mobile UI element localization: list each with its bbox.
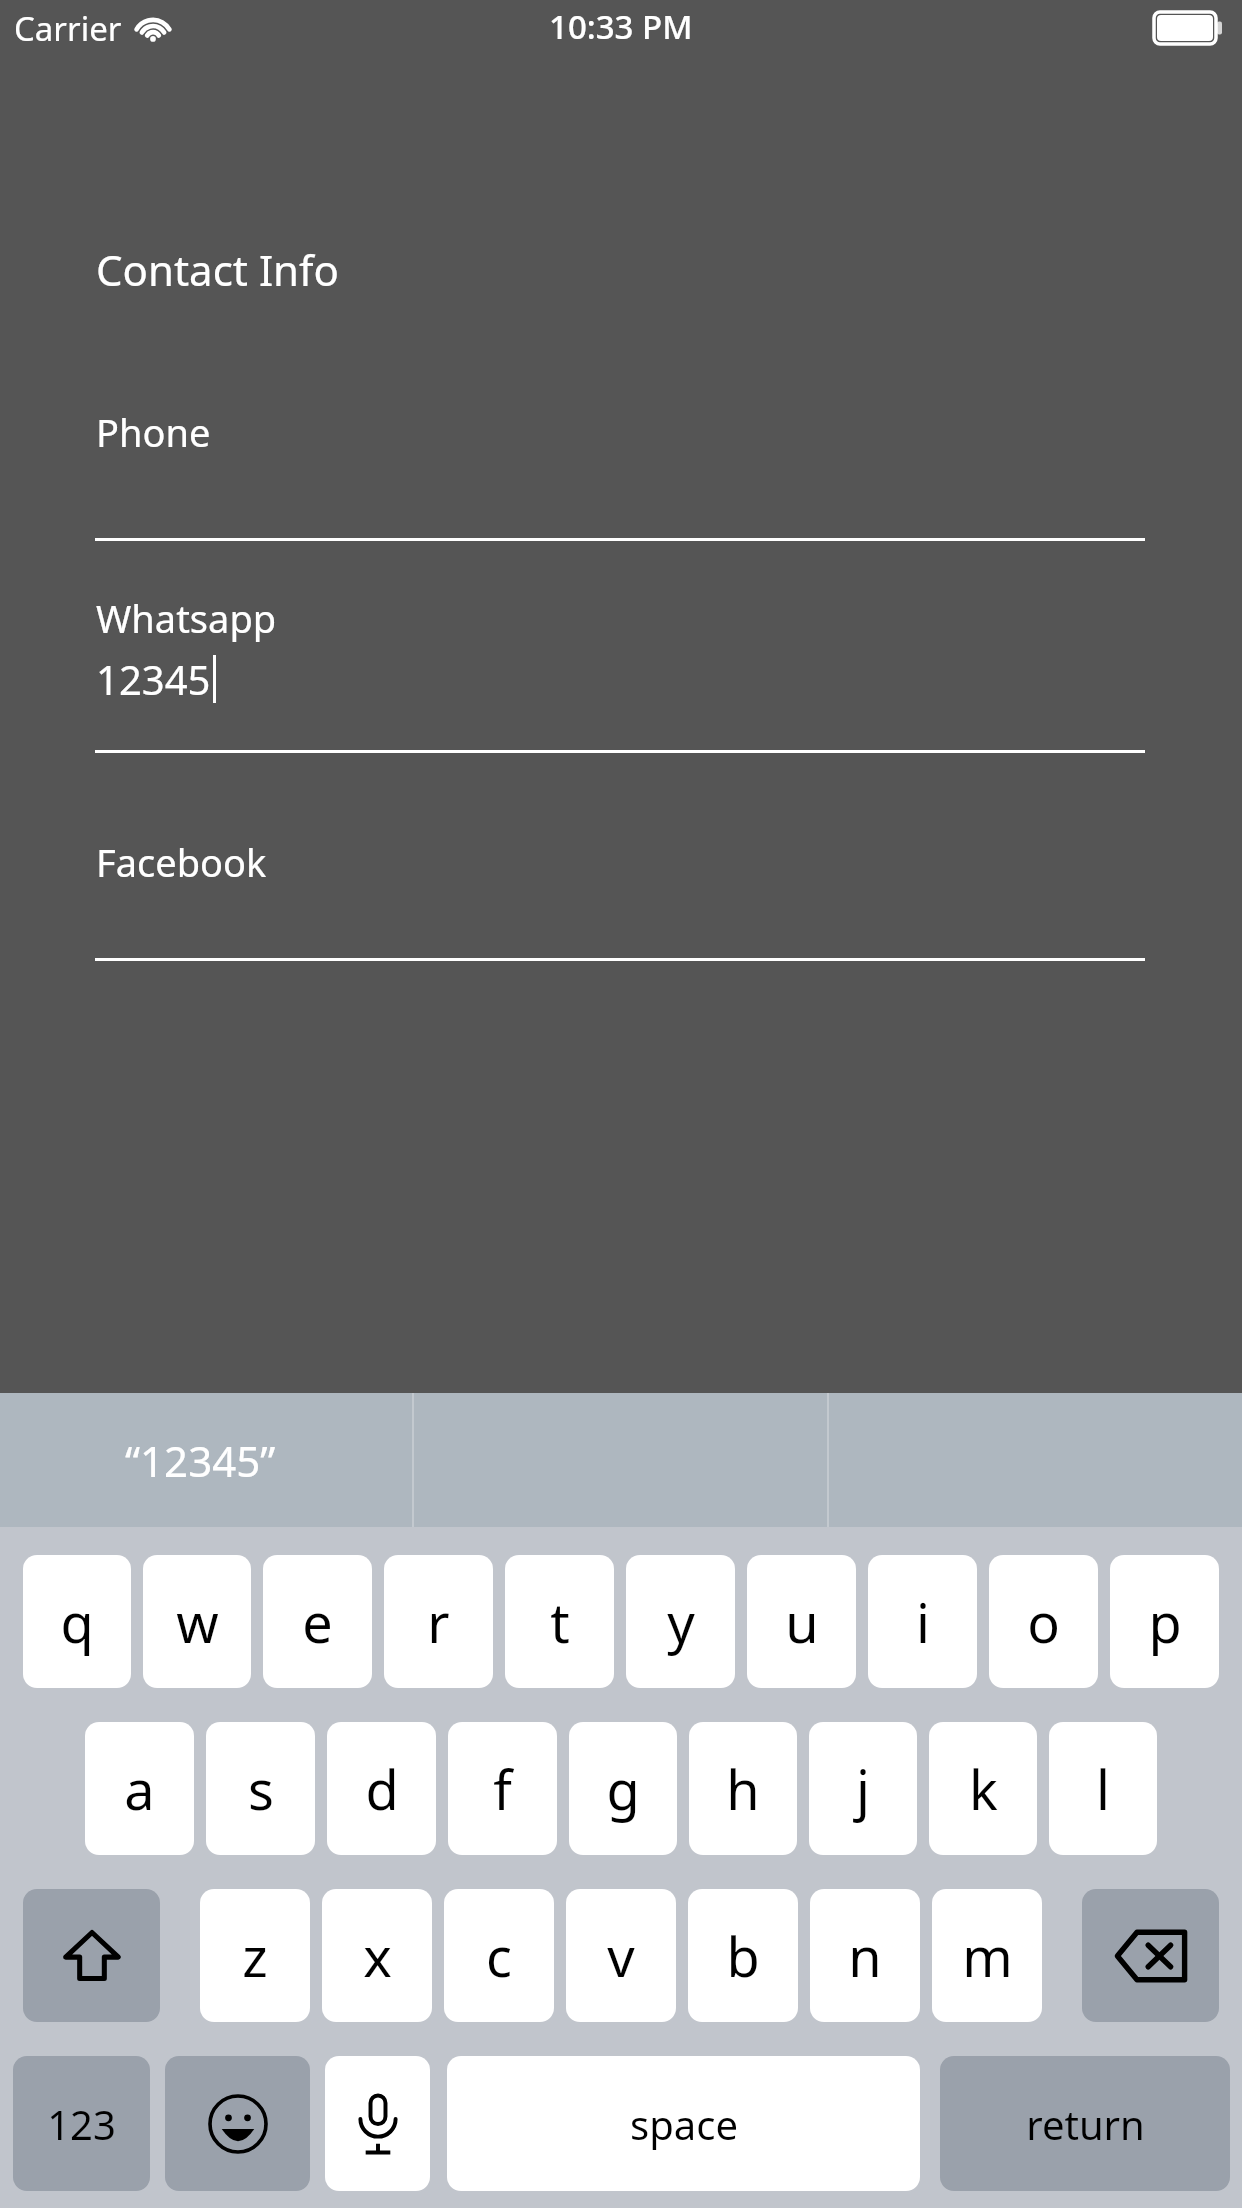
staticText: i <box>916 1585 930 1659</box>
staticText: q <box>60 1585 94 1659</box>
staticText: h <box>726 1752 760 1826</box>
staticText: t <box>550 1585 570 1659</box>
staticText: Contact Info <box>96 241 339 298</box>
button[interactable]: s <box>206 1722 315 1855</box>
button[interactable]: e <box>263 1555 372 1688</box>
button[interactable]: o <box>989 1555 1098 1688</box>
button[interactable]: Emoji keyboard <box>165 2056 310 2191</box>
button[interactable]: g <box>569 1722 677 1855</box>
button[interactable]: x <box>322 1889 432 2022</box>
button[interactable]: “12345” <box>0 1393 412 1527</box>
staticText: a <box>124 1752 155 1826</box>
staticText: d <box>365 1752 399 1826</box>
staticText: space <box>630 2097 738 2151</box>
button[interactable]: b <box>688 1889 798 2022</box>
button[interactable]: t <box>505 1555 614 1688</box>
button[interactable]: u <box>747 1555 856 1688</box>
button[interactable]: r <box>384 1555 493 1688</box>
button[interactable]: Backspace <box>1082 1889 1219 2022</box>
staticText: Phone <box>96 406 211 458</box>
staticText: b <box>726 1919 760 1993</box>
button[interactable]: Dictation <box>325 2056 430 2191</box>
staticText: v <box>607 1919 635 1993</box>
staticText: 10:33 PM <box>549 4 693 49</box>
button[interactable]: y <box>626 1555 735 1688</box>
button[interactable]: m <box>932 1889 1042 2022</box>
staticText: n <box>848 1919 882 1993</box>
staticText: Facebook <box>96 836 267 888</box>
button[interactable]: p <box>1110 1555 1219 1688</box>
staticText: Whatsapp <box>96 592 277 644</box>
button[interactable]: z <box>200 1889 310 2022</box>
button[interactable]: Shift <box>23 1889 160 2022</box>
button[interactable]: j <box>809 1722 917 1855</box>
button[interactable]: return <box>940 2056 1230 2191</box>
staticText: z <box>242 1919 268 1993</box>
button[interactable]: d <box>327 1722 436 1855</box>
staticText: j <box>856 1752 870 1826</box>
button[interactable]: w <box>143 1555 251 1688</box>
staticText: p <box>1148 1585 1182 1659</box>
staticText: Carrier <box>14 6 122 51</box>
staticText: g <box>606 1752 640 1826</box>
button[interactable]: space <box>447 2056 920 2191</box>
staticText: f <box>493 1752 512 1826</box>
staticText: o <box>1027 1585 1060 1659</box>
button[interactable]: a <box>85 1722 194 1855</box>
staticText: l <box>1096 1752 1110 1826</box>
staticText: k <box>969 1752 998 1826</box>
staticText: x <box>363 1919 392 1993</box>
staticText: y <box>667 1585 695 1659</box>
staticText: w <box>176 1585 219 1659</box>
button[interactable]: k <box>929 1722 1037 1855</box>
button[interactable]: h <box>689 1722 797 1855</box>
staticText: s <box>248 1752 274 1826</box>
staticText: 12345 <box>96 652 211 706</box>
button[interactable]: c <box>444 1889 554 2022</box>
button[interactable]: l <box>1049 1722 1157 1855</box>
staticText: r <box>427 1585 450 1659</box>
button[interactable]: f <box>448 1722 557 1855</box>
staticText: m <box>962 1919 1013 1993</box>
staticText: e <box>302 1585 333 1659</box>
staticText: return <box>1026 2097 1145 2151</box>
button[interactable]: i <box>868 1555 977 1688</box>
button[interactable]: q <box>23 1555 131 1688</box>
button[interactable]: v <box>566 1889 676 2022</box>
staticText: u <box>785 1585 819 1659</box>
button[interactable]: 123 <box>13 2056 150 2191</box>
staticText: “12345” <box>125 1432 276 1489</box>
staticText: c <box>486 1919 512 1993</box>
staticText: 123 <box>47 2097 116 2151</box>
button[interactable]: n <box>810 1889 920 2022</box>
